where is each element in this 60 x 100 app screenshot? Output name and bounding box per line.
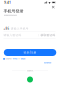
staticText: 《用户协议》 <box>12 58 18 60</box>
staticText: 其他登录方式 <box>27 70 33 72</box>
button[interactable]: 登录/注册 <box>4 49 56 56</box>
staticText: 已阅读并同意 <box>5 58 11 60</box>
button[interactable]: Close <box>50 4 57 11</box>
staticText: 手机号登录 <box>3 9 23 14</box>
staticText: 请输入手机号 <box>11 27 29 30</box>
button[interactable]: WeChat login <box>27 76 33 82</box>
button[interactable]: 获取验证码 <box>39 34 55 37</box>
staticText: 验证码登录/注册 <box>44 62 51 64</box>
staticText: +86 <box>3 27 9 30</box>
staticText: 《隐私政策》 <box>20 58 26 60</box>
staticText: 未注册手机号登录后自动注册 <box>3 14 16 16</box>
staticText: 和 <box>19 58 20 60</box>
button[interactable]: 验证码登录/注册 <box>44 62 51 64</box>
staticText: 登录/注册 <box>24 51 37 54</box>
staticText: 9:41 <box>4 1 11 4</box>
staticText: 获取验证码 <box>40 34 55 37</box>
staticText: 请输入验证码 <box>3 34 21 37</box>
